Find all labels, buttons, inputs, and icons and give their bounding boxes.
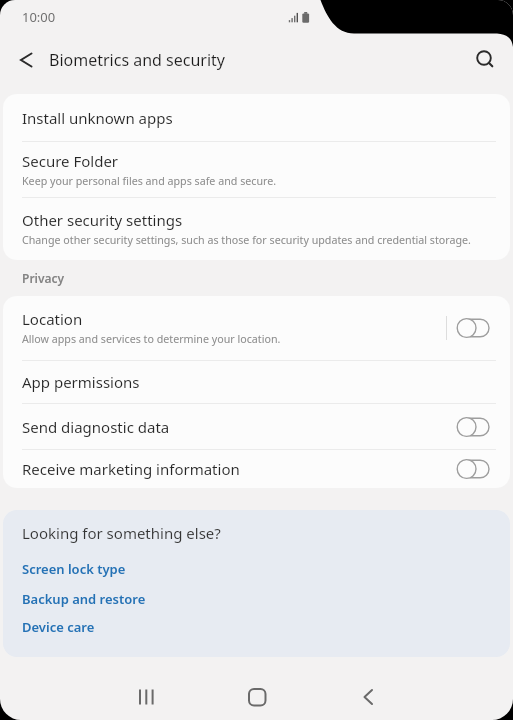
staticText: 10:00 (22, 8, 56, 26)
staticText: Keep your personal files and apps safe a… (22, 174, 277, 189)
staticText: Privacy (22, 270, 65, 286)
staticText: Location (22, 309, 83, 329)
button[interactable]: Screen lock type (22, 560, 126, 578)
staticText: Receive marketing information (22, 459, 240, 479)
button[interactable] (229, 669, 285, 720)
button[interactable]: Backup and restore (22, 590, 146, 608)
staticText: Send diagnostic data (22, 417, 170, 437)
staticText: Install unknown apps (22, 108, 173, 128)
staticText: Allow apps and services to determine you… (22, 332, 281, 347)
button[interactable]: Other security settings (3, 198, 510, 260)
button[interactable]: Device care (22, 618, 95, 636)
button[interactable] (469, 38, 513, 82)
staticText: Other security settings (22, 210, 183, 230)
button[interactable] (0, 38, 44, 82)
staticText: App permissions (22, 372, 140, 392)
button[interactable]: Send diagnostic data (3, 404, 510, 449)
staticText: Change other security settings, such as … (22, 233, 471, 248)
staticText: Biometrics and security (49, 49, 226, 71)
button[interactable]: Receive marketing information (3, 450, 510, 488)
button[interactable] (340, 669, 396, 720)
button[interactable] (118, 669, 174, 720)
button[interactable]: Secure Folder (3, 142, 510, 197)
button[interactable]: App permissions (3, 361, 510, 403)
staticText: Secure Folder (22, 151, 119, 171)
button[interactable]: Location (3, 296, 510, 360)
button[interactable]: Install unknown apps (3, 94, 510, 141)
staticText: Looking for something else? (22, 523, 221, 543)
